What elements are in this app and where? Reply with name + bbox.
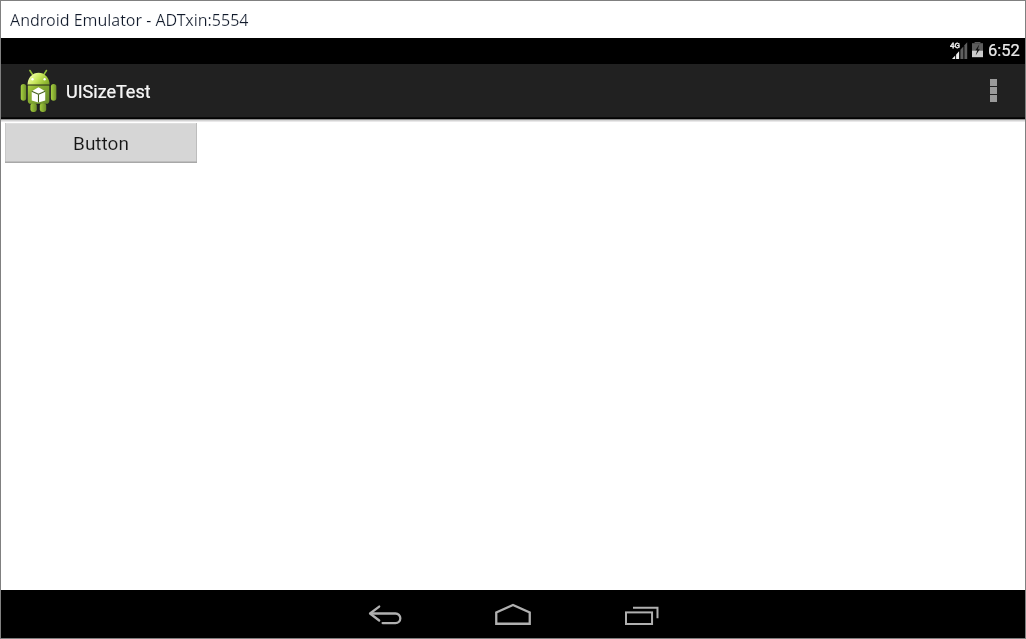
- staticText: Android Emulator - ADTxin:5554: [10, 9, 249, 31]
- staticText: UISizeTest: [66, 81, 151, 102]
- staticText: Button: [73, 132, 129, 154]
- staticText: 6:52: [988, 41, 1020, 60]
- button[interactable]: More options: [966, 64, 1020, 117]
- button[interactable]: Home: [470, 590, 556, 638]
- button[interactable]: Back: [343, 590, 429, 638]
- button[interactable]: Button: [5, 123, 197, 163]
- button[interactable]: Recent apps: [599, 591, 685, 639]
- staticText: 4G: [950, 41, 960, 50]
